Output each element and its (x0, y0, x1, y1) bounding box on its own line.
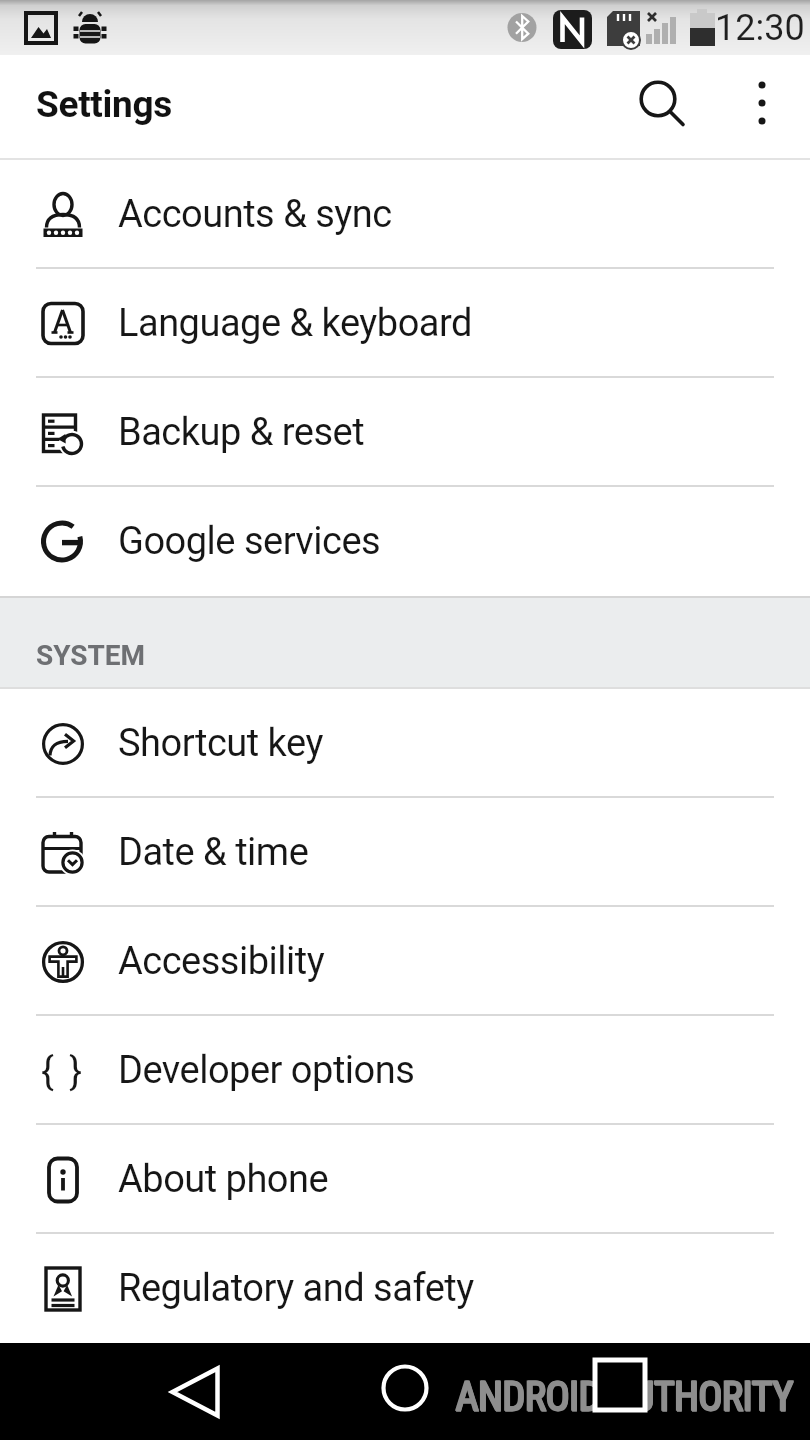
staticText: Google services (118, 519, 381, 564)
staticText: Developer options (118, 1048, 415, 1093)
button[interactable]: Regulatory and safety (0, 1234, 810, 1343)
staticText: { } (28, 1049, 98, 1093)
button[interactable]: Language & keyboard (0, 269, 810, 378)
staticText: Accessibility (118, 939, 325, 984)
staticText: 12:30 (715, 7, 805, 49)
button[interactable]: Accessibility (0, 907, 810, 1016)
staticText: ANDROID AUTHORITY (456, 1374, 794, 1421)
button[interactable]: { } (0, 1016, 810, 1125)
button[interactable]: Date & time (0, 798, 810, 907)
button[interactable]: Google services (0, 487, 810, 596)
button[interactable] (728, 58, 792, 148)
button[interactable]: Accounts & sync (0, 160, 810, 269)
staticText: About phone (118, 1157, 329, 1202)
staticText: ANDROID AUTHORITY (455, 1373, 793, 1420)
button[interactable] (160, 1357, 230, 1427)
staticText: ANDROID AUTHORITY (456, 1373, 794, 1420)
button[interactable]: About phone (0, 1125, 810, 1234)
staticText: Language & keyboard (118, 301, 472, 346)
staticText: Shortcut key (118, 721, 323, 766)
staticText: Settings (36, 83, 173, 126)
button[interactable] (630, 62, 700, 152)
staticText: Backup & reset (118, 410, 365, 455)
staticText: Regulatory and safety (118, 1266, 474, 1311)
button[interactable]: Shortcut key (0, 689, 810, 798)
staticText: SYSTEM (36, 639, 146, 672)
staticText: Accounts & sync (118, 192, 392, 237)
button[interactable]: Backup & reset (0, 378, 810, 487)
button[interactable] (370, 1353, 440, 1423)
staticText: Date & time (118, 830, 309, 875)
button[interactable] (585, 1350, 655, 1420)
